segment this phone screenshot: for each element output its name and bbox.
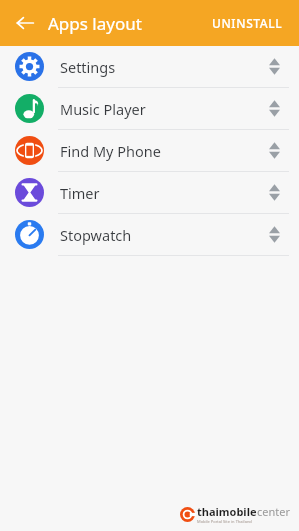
staticText: Music Player [60, 99, 146, 119]
other: Reorder Settings [257, 46, 291, 87]
button[interactable]: Back [8, 6, 42, 40]
other: Reorder Music Player [257, 88, 291, 129]
button[interactable]: Timer [0, 172, 299, 213]
other: Reorder Timer [257, 172, 291, 213]
button[interactable]: Find My Phone [0, 130, 299, 171]
staticText: Timer [60, 183, 100, 203]
staticText: center [257, 504, 290, 519]
button[interactable]: UNINSTALL [202, 9, 293, 37]
button[interactable]: Music Player [0, 88, 299, 129]
staticText: Stopwatch [60, 225, 132, 245]
button[interactable]: Stopwatch [0, 214, 299, 255]
staticText: Find My Phone [60, 141, 161, 161]
staticText: Settings [60, 57, 116, 77]
staticText: Mobile Portal Site in Thailand [197, 519, 252, 524]
staticText: thaimobile [197, 504, 257, 519]
other: Reorder Stopwatch [257, 214, 291, 255]
staticText: UNINSTALL [212, 15, 283, 31]
button[interactable]: Settings [0, 46, 299, 87]
staticText: Apps layout [48, 12, 142, 35]
other: Reorder Find My Phone [257, 130, 291, 171]
